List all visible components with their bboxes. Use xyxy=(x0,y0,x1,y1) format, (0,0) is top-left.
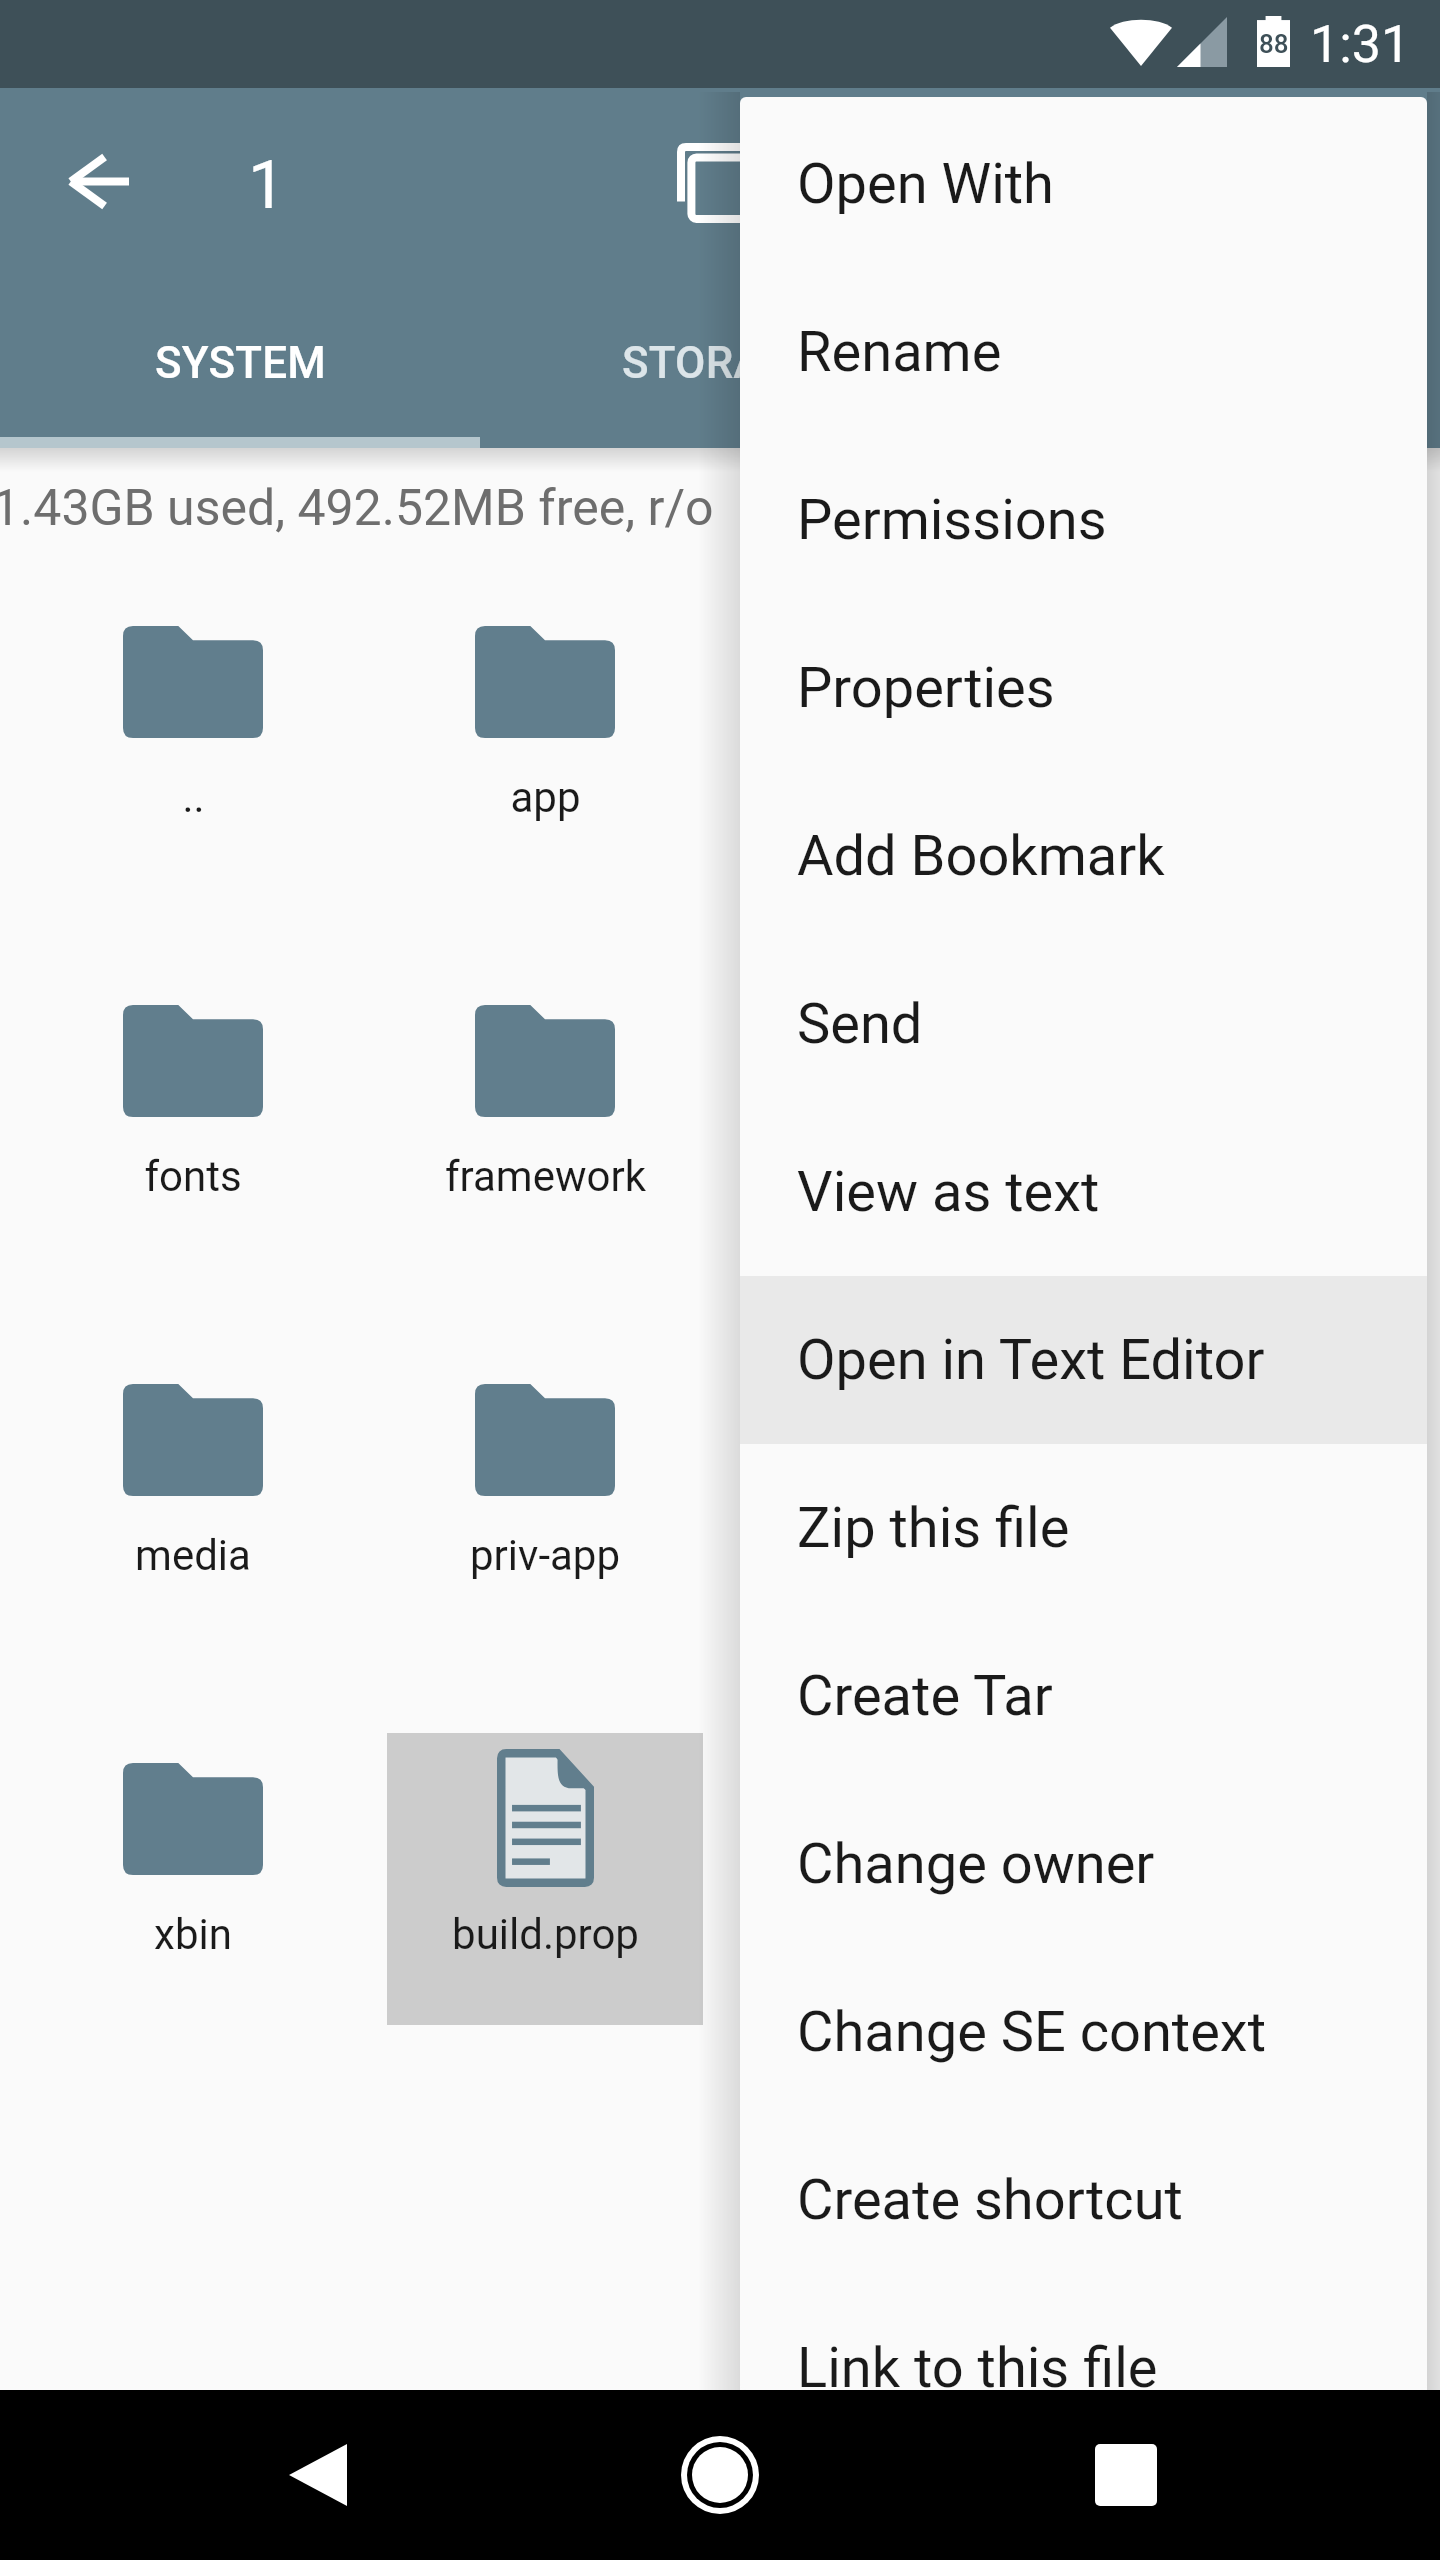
staticText: priv-app xyxy=(470,1531,620,1580)
staticText: 1 xyxy=(248,147,286,224)
button[interactable]: Rename xyxy=(740,268,1427,436)
staticText: STORAGE xyxy=(622,337,818,389)
staticText: Send xyxy=(797,991,923,1057)
button[interactable]: build.prop xyxy=(387,1733,703,2025)
button[interactable]: Home xyxy=(630,2390,810,2560)
staticText: Properties xyxy=(797,655,1055,721)
staticText: Change owner xyxy=(797,1831,1155,1897)
staticText: Zip this file xyxy=(797,1495,1070,1561)
button[interactable]: Change SE context xyxy=(740,1948,1427,2116)
staticText: 1:31 xyxy=(1310,14,1411,75)
button[interactable]: Create Tar xyxy=(740,1612,1427,1780)
button[interactable]: Recents xyxy=(1036,2390,1216,2560)
staticText: Permissions xyxy=(797,487,1107,553)
button[interactable]: Open in Text Editor xyxy=(740,1276,1427,1444)
button[interactable]: xbin xyxy=(35,1733,351,2025)
staticText: .. xyxy=(182,773,205,822)
button[interactable]: Back xyxy=(28,111,168,251)
button[interactable]: Link to this file xyxy=(740,2284,1427,2390)
staticText: 1.43GB used, 492.52MB free, r/o xyxy=(0,479,714,538)
button[interactable]: Change owner xyxy=(740,1780,1427,1948)
staticText: View as text xyxy=(797,1159,1100,1225)
button[interactable]: BOOKMARKS xyxy=(960,286,1440,439)
button[interactable]: app xyxy=(387,596,703,888)
button[interactable]: Open With xyxy=(740,100,1427,268)
staticText: 88 xyxy=(1259,29,1289,59)
staticText: Change SE context xyxy=(797,1999,1266,2065)
button[interactable]: Zip this file xyxy=(740,1444,1427,1612)
button[interactable]: framework xyxy=(387,975,703,1267)
staticText: Open With xyxy=(797,151,1054,217)
button[interactable]: Create shortcut xyxy=(740,2116,1427,2284)
button[interactable]: STORAGE xyxy=(480,286,960,439)
staticText: Rename xyxy=(797,319,1002,385)
staticText: framework xyxy=(445,1152,646,1201)
staticText: Open in Text Editor xyxy=(797,1327,1265,1393)
staticText: SYSTEM xyxy=(155,337,326,389)
button[interactable]: Send xyxy=(740,940,1427,1108)
staticText: Add Bookmark xyxy=(797,823,1165,889)
button[interactable]: media xyxy=(35,1354,351,1646)
button[interactable]: Permissions xyxy=(740,436,1427,604)
staticText: media xyxy=(135,1531,251,1580)
staticText: Create shortcut xyxy=(797,2167,1183,2233)
staticText: xbin xyxy=(154,1910,232,1959)
button[interactable]: Properties xyxy=(740,604,1427,772)
button[interactable]: SYSTEM xyxy=(0,286,480,439)
button[interactable]: Add Bookmark xyxy=(740,772,1427,940)
staticText: Link to this file xyxy=(797,2335,1158,2390)
button[interactable]: Back xyxy=(228,2390,408,2560)
button[interactable]: View as text xyxy=(740,1108,1427,1276)
staticText: build.prop xyxy=(452,1910,639,1959)
staticText: app xyxy=(510,773,581,822)
button[interactable]: fonts xyxy=(35,975,351,1267)
button[interactable]: priv-app xyxy=(387,1354,703,1646)
staticText: Create Tar xyxy=(797,1663,1053,1729)
button[interactable]: Copy xyxy=(647,113,787,253)
button[interactable]: .. xyxy=(35,596,351,888)
staticText: fonts xyxy=(144,1152,242,1201)
